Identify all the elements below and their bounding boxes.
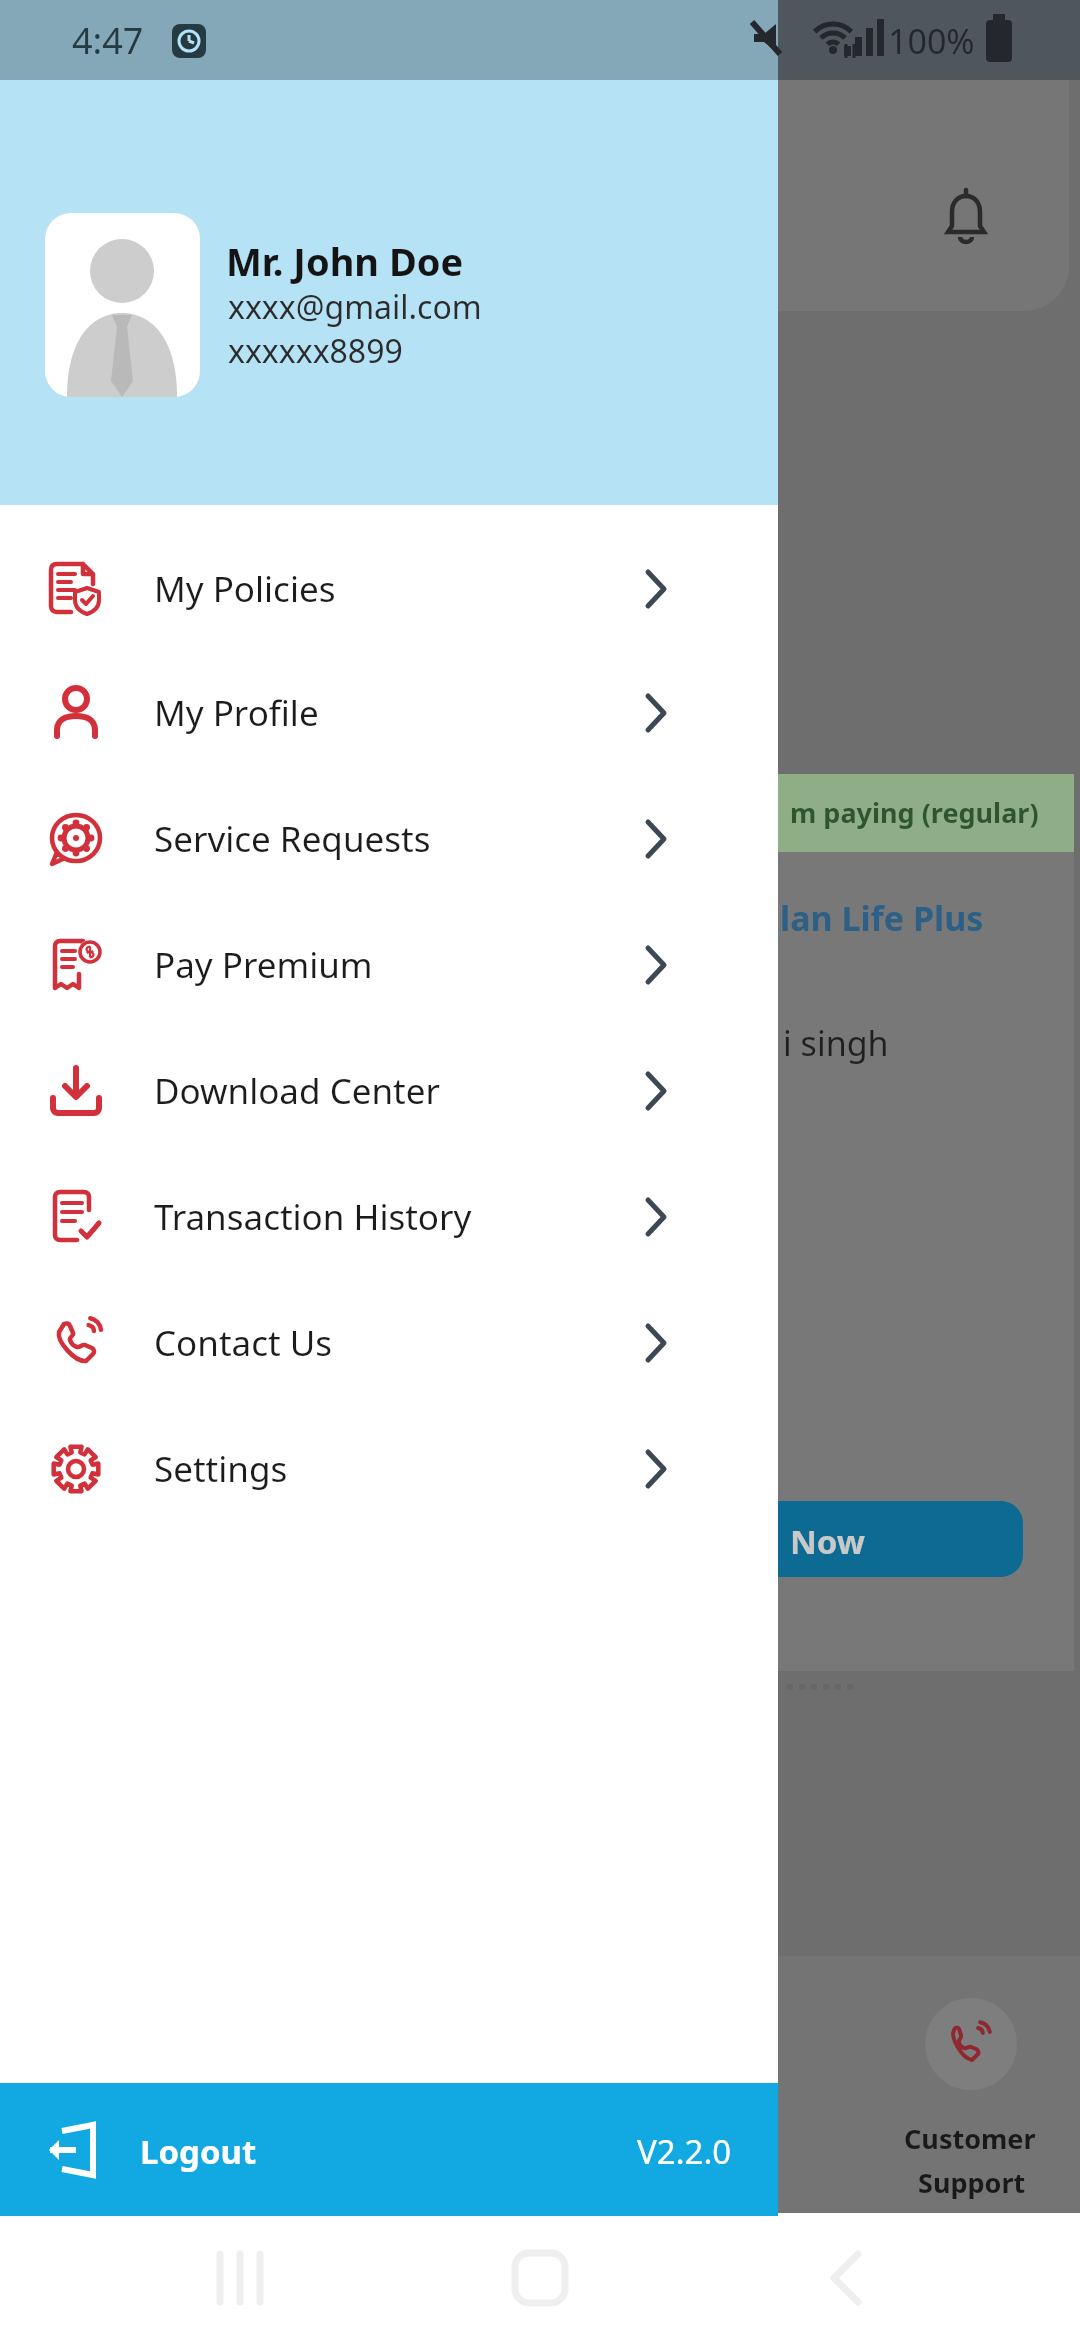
staticText: My Policies [154, 565, 336, 613]
staticText: Download Center [154, 1067, 440, 1115]
button[interactable]: My Policies [0, 526, 778, 652]
button[interactable]: Logout [0, 2083, 778, 2216]
staticText: 100% [888, 18, 975, 64]
staticText: Logout [140, 2129, 257, 2174]
staticText: m paying (regular) [790, 794, 1039, 831]
button[interactable]: Settings [0, 1406, 778, 1532]
staticText: 4:47 [72, 16, 144, 65]
staticText: Pay Premium [154, 941, 373, 989]
button[interactable]: Service Requests [0, 776, 778, 902]
staticText: lan Life Plus [780, 895, 984, 941]
button[interactable]: Download Center [0, 1028, 778, 1154]
staticText: Service Requests [154, 815, 431, 863]
staticText: Settings [154, 1445, 288, 1493]
staticText: Transaction History [154, 1193, 472, 1241]
staticText: Support [918, 2164, 1026, 2201]
staticText: xxxx@gmail.com [228, 285, 482, 329]
staticText: i singh [783, 1020, 889, 1066]
staticText: My Profile [154, 689, 319, 737]
staticText: V2.2.0 [637, 2129, 732, 2174]
staticText: Contact Us [154, 1319, 333, 1367]
staticText: Customer [904, 2120, 1036, 2157]
staticText: Mr. John Doe [226, 235, 464, 287]
staticText: xxxxxx8899 [228, 329, 403, 373]
button[interactable]: Pay Premium [0, 902, 778, 1028]
button[interactable]: My Profile [0, 650, 778, 776]
staticText: Now [790, 1519, 866, 1564]
button[interactable]: Now [738, 1501, 1023, 1577]
button[interactable]: Contact Us [0, 1280, 778, 1406]
button[interactable]: Transaction History [0, 1154, 778, 1280]
